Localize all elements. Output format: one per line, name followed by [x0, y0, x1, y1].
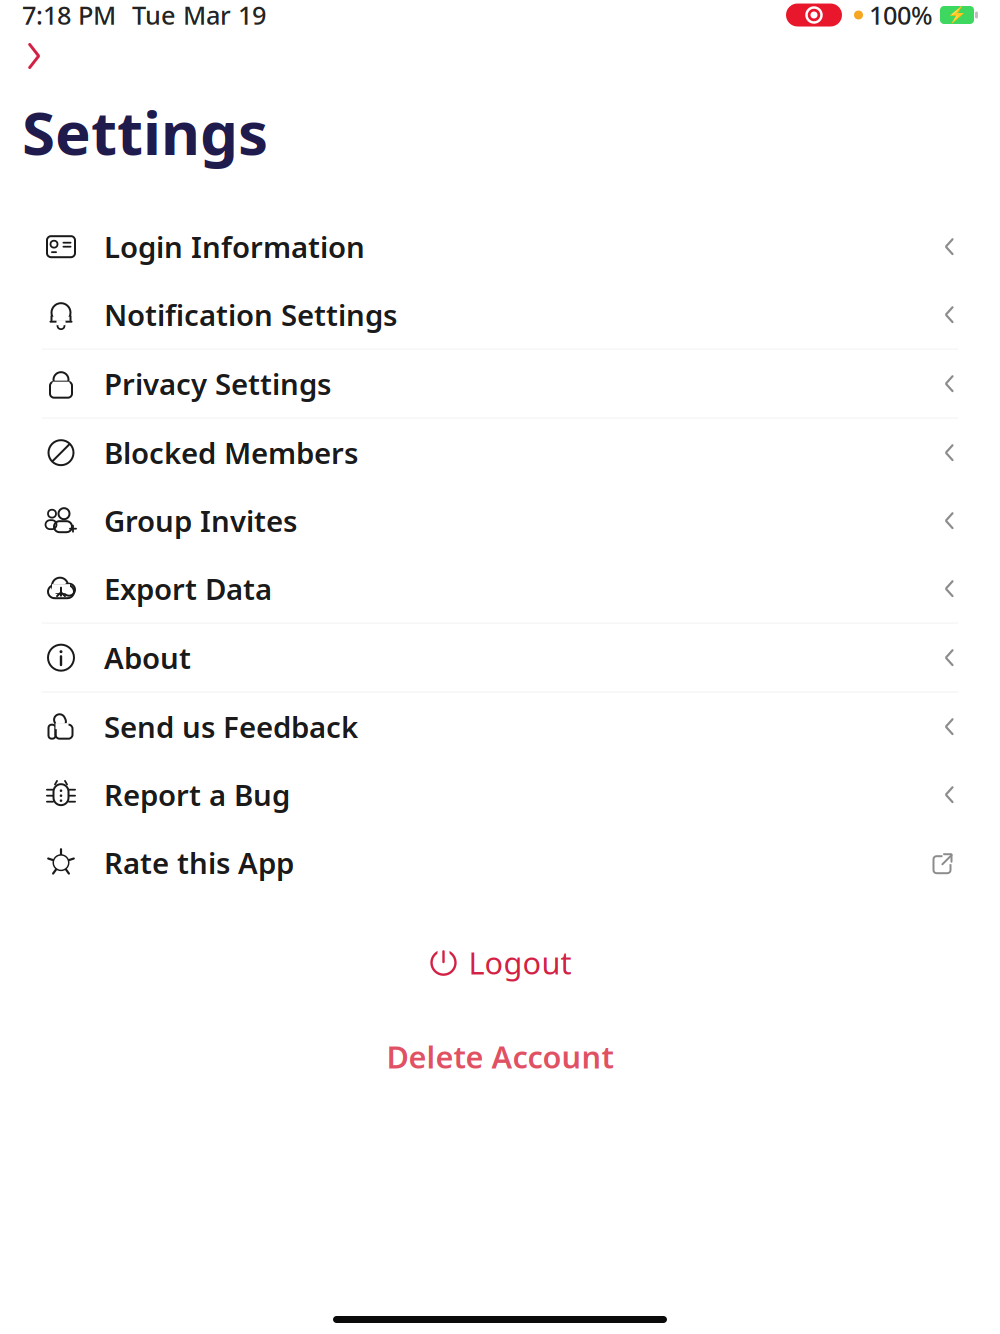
- button[interactable]: Blocked Members: [0, 419, 1000, 487]
- button[interactable]: Privacy Settings: [0, 350, 1000, 418]
- staticText: About: [104, 638, 191, 677]
- staticText: Privacy Settings: [104, 364, 331, 403]
- staticText: Send us Feedback: [104, 707, 358, 746]
- button[interactable]: Logout: [410, 937, 589, 989]
- button[interactable]: About: [0, 624, 1000, 692]
- staticText: Tue Mar 19: [132, 0, 266, 32]
- staticText: Delete Account: [386, 1036, 613, 1077]
- staticText: Notification Settings: [104, 295, 397, 334]
- button[interactable]: Report a Bug: [0, 761, 1000, 829]
- staticText: Rate this App: [104, 843, 294, 882]
- staticText: Settings: [22, 92, 268, 172]
- staticText: Login Information: [104, 227, 365, 266]
- staticText: 100%: [869, 0, 933, 32]
- button[interactable]: Export Data: [0, 555, 1000, 623]
- button[interactable]: Rate this App: [0, 829, 1000, 897]
- button[interactable]: Notification Settings: [0, 281, 1000, 349]
- staticText: Logout: [468, 942, 571, 983]
- staticText: Report a Bug: [104, 775, 290, 814]
- button[interactable]: Delete Account: [366, 1033, 633, 1081]
- button[interactable]: Back: [12, 36, 56, 76]
- staticText: Group Invites: [104, 501, 297, 540]
- staticText: Export Data: [104, 569, 272, 608]
- button[interactable]: Send us Feedback: [0, 693, 1000, 761]
- staticText: Blocked Members: [104, 433, 358, 472]
- staticText: ⚡: [947, 6, 967, 24]
- staticText: 7:18 PM: [22, 0, 116, 32]
- button[interactable]: Group Invites: [0, 487, 1000, 555]
- button[interactable]: Login Information: [0, 213, 1000, 281]
